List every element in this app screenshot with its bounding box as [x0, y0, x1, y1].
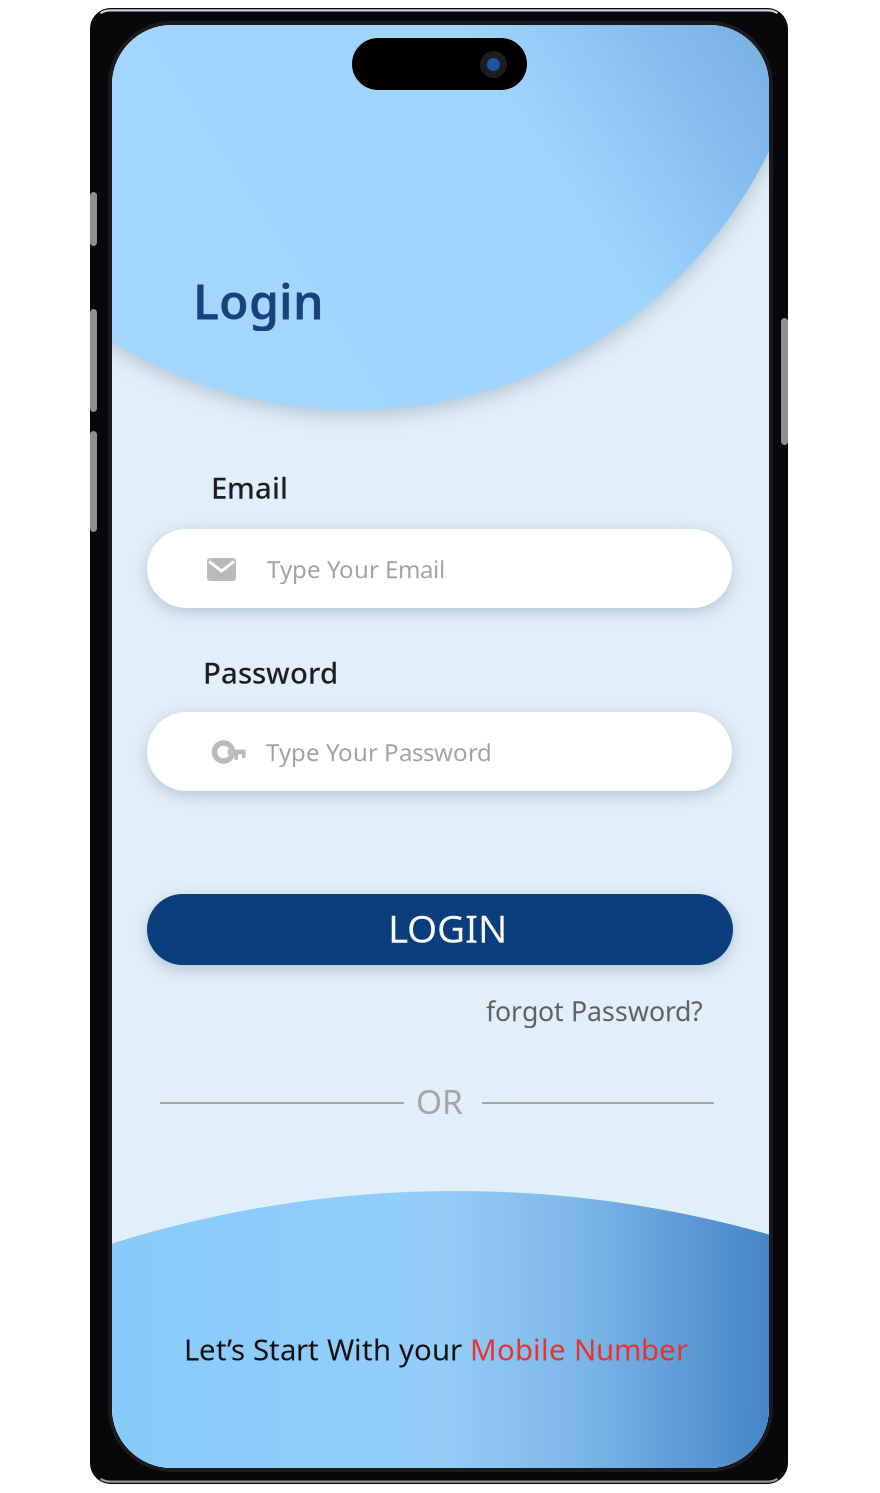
button[interactable]: Type Your Password — [147, 712, 732, 791]
button[interactable]: forgot Password? — [486, 994, 746, 1028]
staticText: forgot Password? — [486, 993, 703, 1029]
staticText: Type Your Email — [267, 553, 445, 585]
staticText: Let’s Start With your — [184, 1329, 470, 1368]
staticText: Login — [193, 269, 324, 333]
staticText: Password — [203, 653, 338, 692]
button[interactable]: Type Your Email — [147, 529, 732, 608]
staticText: OR — [416, 1079, 463, 1123]
staticText: Email — [211, 468, 288, 507]
staticText: Mobile Number — [470, 1329, 688, 1368]
button[interactable]: LOGIN — [147, 894, 733, 965]
staticText: LOGIN — [388, 902, 507, 953]
staticText: Type Your Password — [266, 736, 492, 768]
